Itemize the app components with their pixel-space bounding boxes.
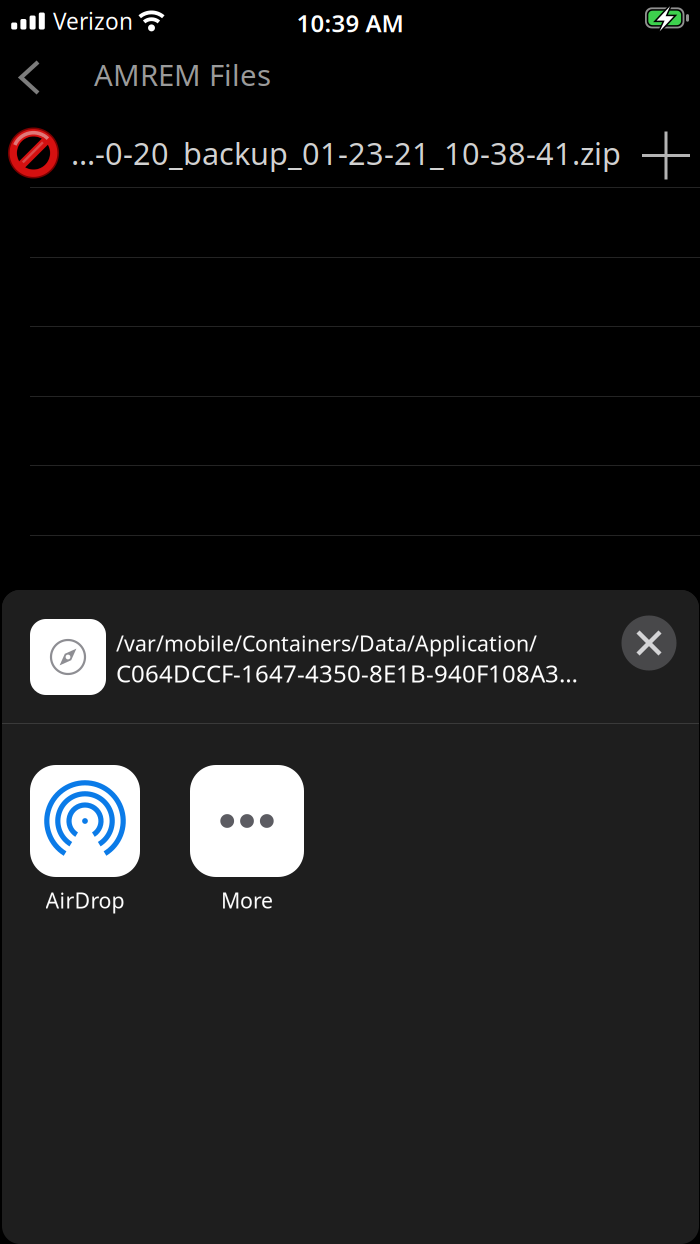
button[interactable]: Back <box>0 46 74 118</box>
button[interactable]: Empty row <box>0 464 700 533</box>
button[interactable]: Add <box>636 118 700 187</box>
staticText: Verizon <box>53 6 133 36</box>
staticText: 10:39 AM <box>296 7 403 39</box>
button[interactable]: AirDrop <box>30 765 140 914</box>
button[interactable]: Empty row <box>0 395 700 464</box>
staticText: More <box>221 886 273 914</box>
button[interactable]: Empty row <box>0 257 700 326</box>
staticText: C064DCCF-1647-4350-8E1B-940F108A3… <box>116 657 578 689</box>
button[interactable]: Close <box>611 605 687 681</box>
staticText: AMREM Files <box>94 55 271 94</box>
staticText: ...-0-20_backup_01-23-21_10-38-41.zip <box>71 133 621 173</box>
staticText: AirDrop <box>45 886 124 914</box>
button[interactable]: ...-0-20_backup_01-23-21_10-38-41.zip <box>0 118 636 187</box>
staticText: /var/mobile/Containers/Data/Application/ <box>116 629 537 657</box>
button[interactable]: Empty row <box>0 326 700 395</box>
button[interactable]: More <box>190 765 304 914</box>
